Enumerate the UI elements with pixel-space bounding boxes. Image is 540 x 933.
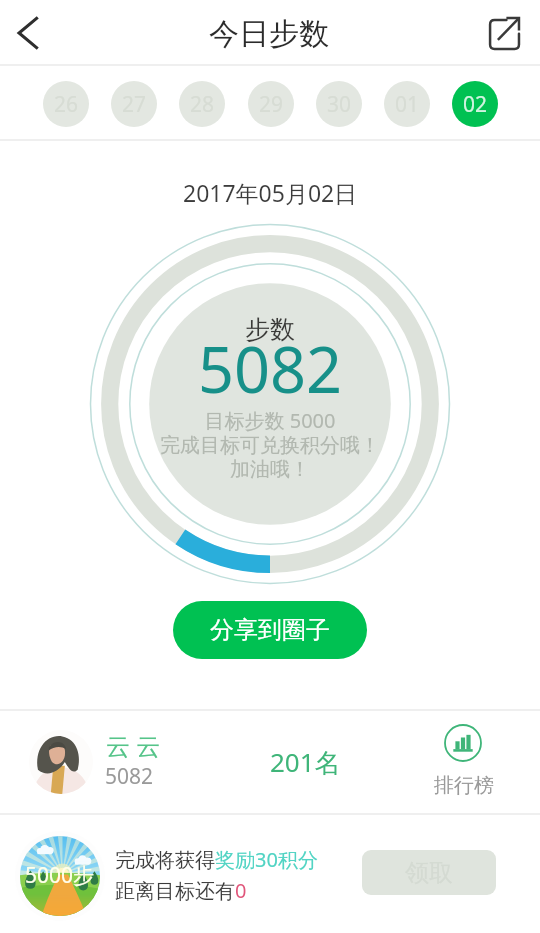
button[interactable]: 云 云 — [0, 711, 540, 812]
button[interactable]: 分享到圈子 — [173, 601, 367, 659]
staticText: 5082 — [105, 762, 154, 791]
button[interactable]: 26 — [43, 81, 89, 127]
staticText: 今日步数 — [209, 15, 329, 53]
button[interactable]: 01 — [384, 81, 430, 127]
staticText: 01 — [395, 90, 420, 119]
button[interactable]: Back — [4, 5, 60, 61]
staticText: 28 — [190, 90, 215, 119]
staticText: 5000步 — [25, 861, 95, 890]
staticText: 02 — [463, 90, 488, 119]
staticText: 云 云 — [106, 729, 161, 762]
staticText: 26 — [54, 90, 79, 119]
staticText: 201名 — [270, 744, 341, 780]
staticText: 30 — [327, 90, 352, 119]
button[interactable]: 27 — [111, 81, 157, 127]
staticText: 5082 — [198, 326, 343, 412]
button[interactable]: 30 — [316, 81, 362, 127]
button[interactable]: 领取 — [362, 850, 496, 895]
button[interactable]: 02 — [452, 81, 498, 127]
staticText: 目标步数 5000 完成目标可兑换积分哦！ 加油哦！ — [160, 407, 380, 481]
staticText: 完成将获得奖励30积分 — [115, 846, 318, 873]
button[interactable]: Share — [478, 8, 528, 58]
staticText: 步数 — [245, 314, 295, 345]
staticText: 2017年05月02日 — [183, 177, 358, 208]
staticText: 领取 — [405, 858, 453, 888]
staticText: 27 — [122, 90, 147, 119]
button[interactable]: 28 — [179, 81, 225, 127]
staticText: 分享到圈子 — [210, 615, 330, 645]
button[interactable]: 29 — [248, 81, 294, 127]
staticText: 距离目标还有0 — [115, 877, 247, 904]
staticText: 29 — [259, 90, 284, 119]
staticText: 排行榜 — [434, 773, 494, 798]
